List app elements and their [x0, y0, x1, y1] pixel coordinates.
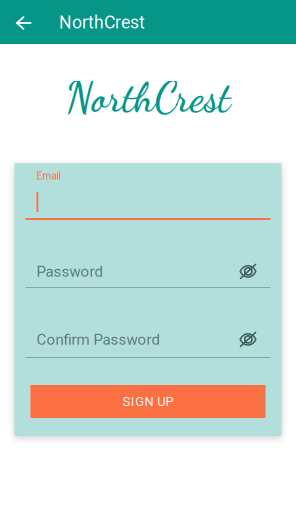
- staticText: Password: [36, 263, 102, 280]
- button[interactable]: SIGN UP: [30, 385, 265, 418]
- staticText: NorthCrest: [59, 12, 145, 33]
- button[interactable]: Show Password: [234, 262, 261, 281]
- staticText: Confirm Password: [36, 331, 159, 348]
- staticText: Email: [36, 170, 60, 182]
- button[interactable]: Back: [7, 0, 41, 44]
- staticText: NorthCrest: [65, 73, 230, 122]
- staticText: SIGN UP: [122, 394, 174, 409]
- button[interactable]: Show Confirm Password: [234, 330, 261, 349]
